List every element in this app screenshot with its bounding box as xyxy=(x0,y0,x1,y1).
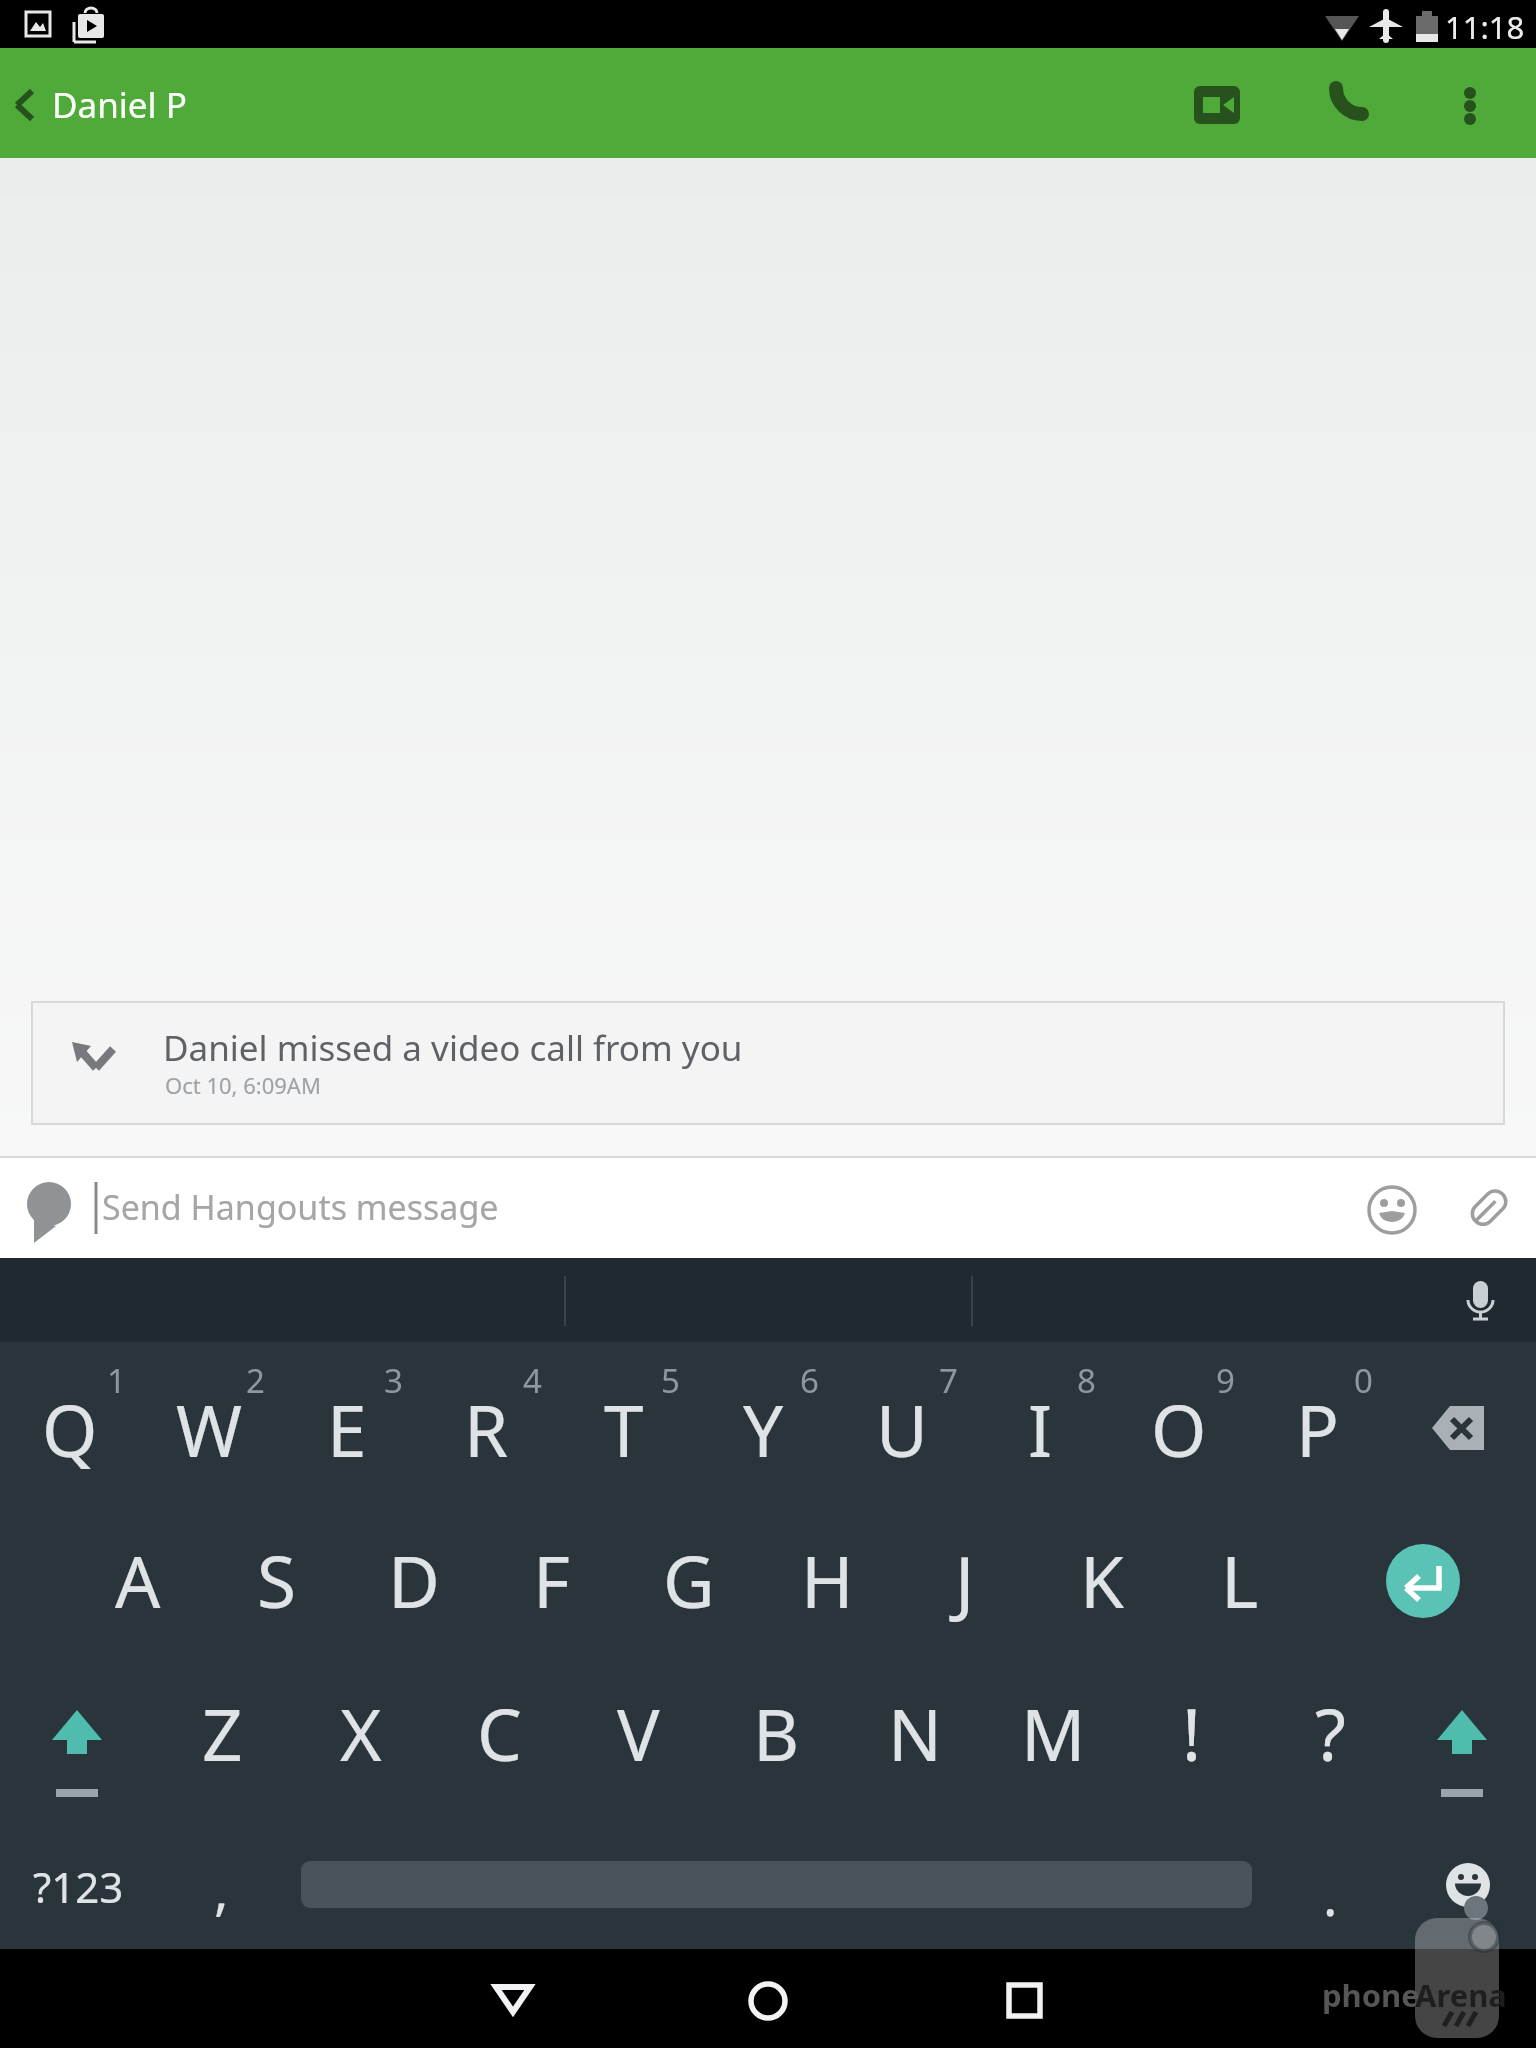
staticText: S xyxy=(257,1532,296,1629)
button[interactable]: I xyxy=(930,1349,1150,1509)
button[interactable] xyxy=(1310,70,1380,140)
staticText: T xyxy=(604,1381,644,1478)
staticText: H xyxy=(801,1532,854,1629)
staticText: Daniel missed a video call from you xyxy=(163,1024,743,1072)
staticText: 6 xyxy=(800,1358,819,1403)
staticText: X xyxy=(340,1685,382,1782)
button[interactable]: . xyxy=(1220,1815,1440,1975)
button[interactable]: L xyxy=(1130,1500,1350,1660)
staticText: F xyxy=(533,1532,570,1629)
button[interactable]: V xyxy=(528,1653,748,1813)
button[interactable] xyxy=(300,1850,1252,1920)
button[interactable]: T xyxy=(514,1349,734,1509)
staticText: Send Hangouts message xyxy=(102,1184,499,1230)
staticText: 0 xyxy=(1354,1358,1373,1403)
button[interactable]: C xyxy=(389,1653,609,1813)
button[interactable]: X xyxy=(251,1653,471,1813)
staticText: V xyxy=(617,1685,660,1782)
staticText: R xyxy=(464,1381,509,1478)
button[interactable] xyxy=(1360,1172,1426,1242)
staticText: O xyxy=(1151,1381,1207,1478)
staticText: 7 xyxy=(939,1358,958,1403)
staticText: I xyxy=(1028,1381,1053,1478)
staticText: Daniel P xyxy=(52,81,187,129)
staticText: Oct 10, 6:09AM xyxy=(165,1070,321,1100)
button[interactable]: ! xyxy=(1082,1653,1302,1813)
staticText: 11:18 xyxy=(1445,6,1525,48)
button[interactable] xyxy=(1400,1390,1530,1470)
button[interactable]: A xyxy=(28,1500,248,1660)
staticText: Y xyxy=(743,1381,784,1478)
button[interactable]: B xyxy=(666,1653,886,1813)
staticText: Q xyxy=(42,1381,98,1478)
staticText: ? xyxy=(1315,1685,1346,1782)
button[interactable]: K xyxy=(992,1500,1212,1660)
button[interactable] xyxy=(0,68,70,138)
button[interactable]: P xyxy=(1207,1349,1427,1509)
staticText: J xyxy=(955,1532,975,1629)
staticText: C xyxy=(477,1685,522,1782)
button[interactable]: O xyxy=(1069,1349,1289,1509)
staticText: W xyxy=(176,1381,243,1478)
staticText: 5 xyxy=(661,1358,680,1403)
button[interactable] xyxy=(1420,1266,1530,1334)
button[interactable]: G xyxy=(579,1500,799,1660)
button[interactable] xyxy=(1435,70,1505,140)
button[interactable]: N xyxy=(805,1653,1025,1813)
button[interactable]: U xyxy=(792,1349,1012,1509)
staticText: K xyxy=(1080,1532,1124,1629)
button[interactable]: M xyxy=(943,1653,1163,1813)
button[interactable]: W xyxy=(99,1349,319,1509)
button[interactable] xyxy=(1182,70,1252,140)
button[interactable]: ?123 xyxy=(0,1806,188,1966)
staticText: ?123 xyxy=(33,1858,124,1915)
staticText: 1 xyxy=(107,1358,126,1403)
staticText: G xyxy=(663,1532,715,1629)
staticText: L xyxy=(1221,1532,1259,1629)
staticText: 4 xyxy=(523,1358,542,1403)
button[interactable] xyxy=(90,1160,1330,1256)
button[interactable]: , xyxy=(111,1809,331,1969)
staticText: B xyxy=(753,1685,800,1782)
button[interactable] xyxy=(440,1956,580,2046)
button[interactable] xyxy=(32,1002,1504,1124)
button[interactable]: S xyxy=(166,1500,386,1660)
button[interactable]: E xyxy=(237,1349,457,1509)
button[interactable]: Y xyxy=(653,1349,873,1509)
staticText: . xyxy=(1323,1858,1338,1932)
staticText: 2 xyxy=(246,1358,265,1403)
staticText: 9 xyxy=(1216,1358,1235,1403)
staticText: M xyxy=(1021,1685,1086,1782)
button[interactable]: F xyxy=(441,1500,661,1660)
staticText: , xyxy=(214,1852,229,1926)
button[interactable]: R xyxy=(376,1349,596,1509)
button[interactable]: Z xyxy=(112,1653,332,1813)
staticText: A xyxy=(115,1532,161,1629)
button[interactable]: H xyxy=(717,1500,937,1660)
button[interactable] xyxy=(20,1680,140,1800)
staticText: P xyxy=(1296,1381,1339,1478)
staticText: Arena xyxy=(1415,1974,1507,2016)
button[interactable] xyxy=(1360,1520,1490,1640)
button[interactable] xyxy=(700,1956,840,2046)
button[interactable]: Q xyxy=(0,1349,180,1509)
button[interactable]: D xyxy=(304,1500,524,1660)
staticText: Z xyxy=(202,1685,243,1782)
staticText: E xyxy=(327,1381,367,1478)
button[interactable] xyxy=(1455,1172,1521,1242)
staticText: U xyxy=(876,1381,928,1478)
button[interactable]: ? xyxy=(1220,1653,1440,1813)
staticText: phone xyxy=(1322,1974,1420,2016)
staticText: ! xyxy=(1182,1685,1202,1782)
staticText: D xyxy=(388,1532,440,1629)
button[interactable] xyxy=(950,1956,1090,2046)
button[interactable] xyxy=(1430,1850,1506,1920)
staticText: 8 xyxy=(1077,1358,1096,1403)
staticText: 3 xyxy=(384,1358,403,1403)
button[interactable] xyxy=(1400,1680,1520,1800)
button[interactable]: J xyxy=(855,1500,1075,1660)
staticText: N xyxy=(888,1685,942,1782)
